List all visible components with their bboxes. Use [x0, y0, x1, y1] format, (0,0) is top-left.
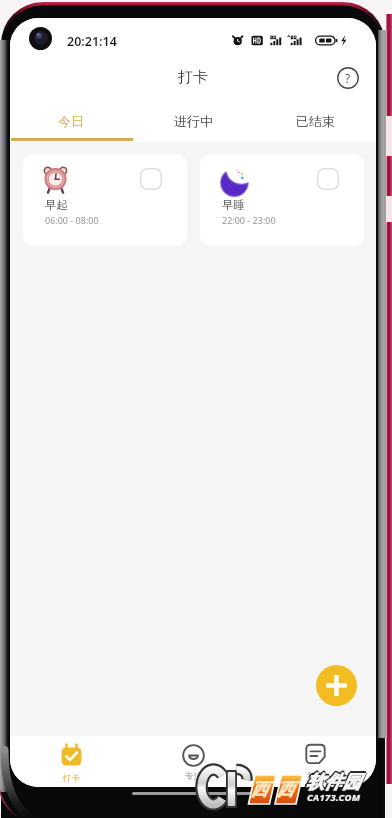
staticText: 已结束 — [296, 113, 335, 129]
staticText: 22:00 - 23:00 — [222, 214, 276, 226]
staticText: CA173.COM — [307, 791, 361, 804]
staticText: 软件园 — [307, 771, 362, 794]
staticText: CA173.COM — [306, 791, 360, 804]
staticText: ? — [345, 70, 351, 86]
staticText: 软件园 — [306, 771, 361, 794]
staticText: CA173.COM — [307, 791, 361, 804]
button[interactable]: 我的 — [254, 736, 376, 787]
staticText: 06:00 - 08:00 — [45, 214, 99, 226]
staticText: 今日 — [58, 113, 84, 129]
staticText: 软件园 — [304, 771, 359, 794]
button[interactable]: 进行中 — [132, 104, 254, 138]
staticText: CA173.COM — [307, 791, 361, 804]
button[interactable]: 专注 — [132, 736, 254, 787]
staticText: CA173.COM — [307, 790, 361, 803]
staticText: 软件园 — [306, 772, 361, 795]
staticText: 软件园 — [306, 771, 361, 794]
button[interactable]: Mark done — [317, 168, 339, 190]
staticText: 软件园 — [306, 769, 361, 792]
staticText: CA173.COM — [307, 791, 361, 804]
staticText: 进行中 — [174, 113, 213, 129]
staticText: CA173.COM — [306, 791, 360, 804]
staticText: CA173.COM — [307, 790, 361, 803]
staticText: 软件园 — [305, 771, 360, 794]
button[interactable]: Help — [337, 67, 359, 89]
button[interactable]: Mark done — [140, 168, 162, 190]
button[interactable]: Add habit — [316, 665, 357, 706]
staticText: 早睡 — [222, 198, 245, 212]
staticText: 打卡 — [178, 68, 208, 87]
staticText: 西 — [251, 779, 268, 800]
staticText: 软件园 — [305, 770, 360, 793]
staticText: 我的 — [307, 771, 324, 782]
staticText: 软件园 — [306, 770, 361, 793]
staticText: 20:21:14 — [67, 33, 117, 50]
button[interactable]: 早睡 — [200, 154, 364, 246]
staticText: CA173.COM — [306, 790, 360, 803]
button[interactable]: 打卡 — [10, 736, 132, 787]
button[interactable]: 早起 — [23, 154, 187, 246]
button[interactable]: 今日 — [10, 104, 132, 138]
staticText: 西 — [277, 779, 294, 800]
button[interactable]: 已结束 — [254, 104, 376, 138]
staticText: 打卡 — [63, 773, 80, 784]
staticText: 专注 — [185, 771, 202, 782]
staticText: 早起 — [45, 198, 68, 212]
